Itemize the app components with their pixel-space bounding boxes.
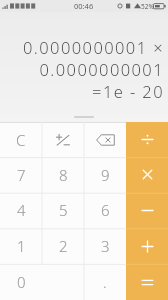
button[interactable]: 3 <box>84 228 126 264</box>
button[interactable]: Divide <box>126 122 168 157</box>
staticText: 0.0000000001 <box>39 58 164 80</box>
staticText: 4 <box>17 200 26 220</box>
staticText: C <box>16 130 26 150</box>
staticText: 2 <box>59 236 68 256</box>
staticText: 6 <box>101 200 110 220</box>
button[interactable]: Minus <box>126 192 168 228</box>
staticText: 5 <box>59 200 68 220</box>
staticText: 3 <box>101 236 110 256</box>
button[interactable]: 4 <box>0 192 42 228</box>
staticText: =1e - 20 <box>92 80 164 102</box>
button[interactable]: . <box>84 264 126 300</box>
staticText: 8 <box>59 165 68 185</box>
button[interactable]: 2 <box>42 228 84 264</box>
staticText: . <box>103 272 107 292</box>
staticText: 0.0000000001 × <box>23 36 164 58</box>
button[interactable]: 5 <box>42 192 84 228</box>
button[interactable]: Plus <box>126 228 168 264</box>
button[interactable]: Backspace <box>84 122 126 157</box>
button[interactable]: 9 <box>84 157 126 192</box>
button[interactable]: C <box>0 122 42 157</box>
button[interactable]: 0 <box>0 264 84 300</box>
staticText: 0 <box>17 272 26 292</box>
button[interactable]: 7 <box>0 157 42 192</box>
staticText: 52% <box>141 2 154 11</box>
staticText: 1 <box>17 236 26 256</box>
button[interactable]: Plus minus <box>42 122 84 157</box>
button[interactable]: 8 <box>42 157 84 192</box>
button[interactable]: Multiply <box>126 157 168 192</box>
staticText: 9 <box>101 165 110 185</box>
staticText: 7 <box>17 165 26 185</box>
button[interactable]: 6 <box>84 192 126 228</box>
button[interactable]: 1 <box>0 228 42 264</box>
staticText: 00:46 <box>74 1 94 11</box>
button[interactable]: Equals <box>126 264 168 300</box>
